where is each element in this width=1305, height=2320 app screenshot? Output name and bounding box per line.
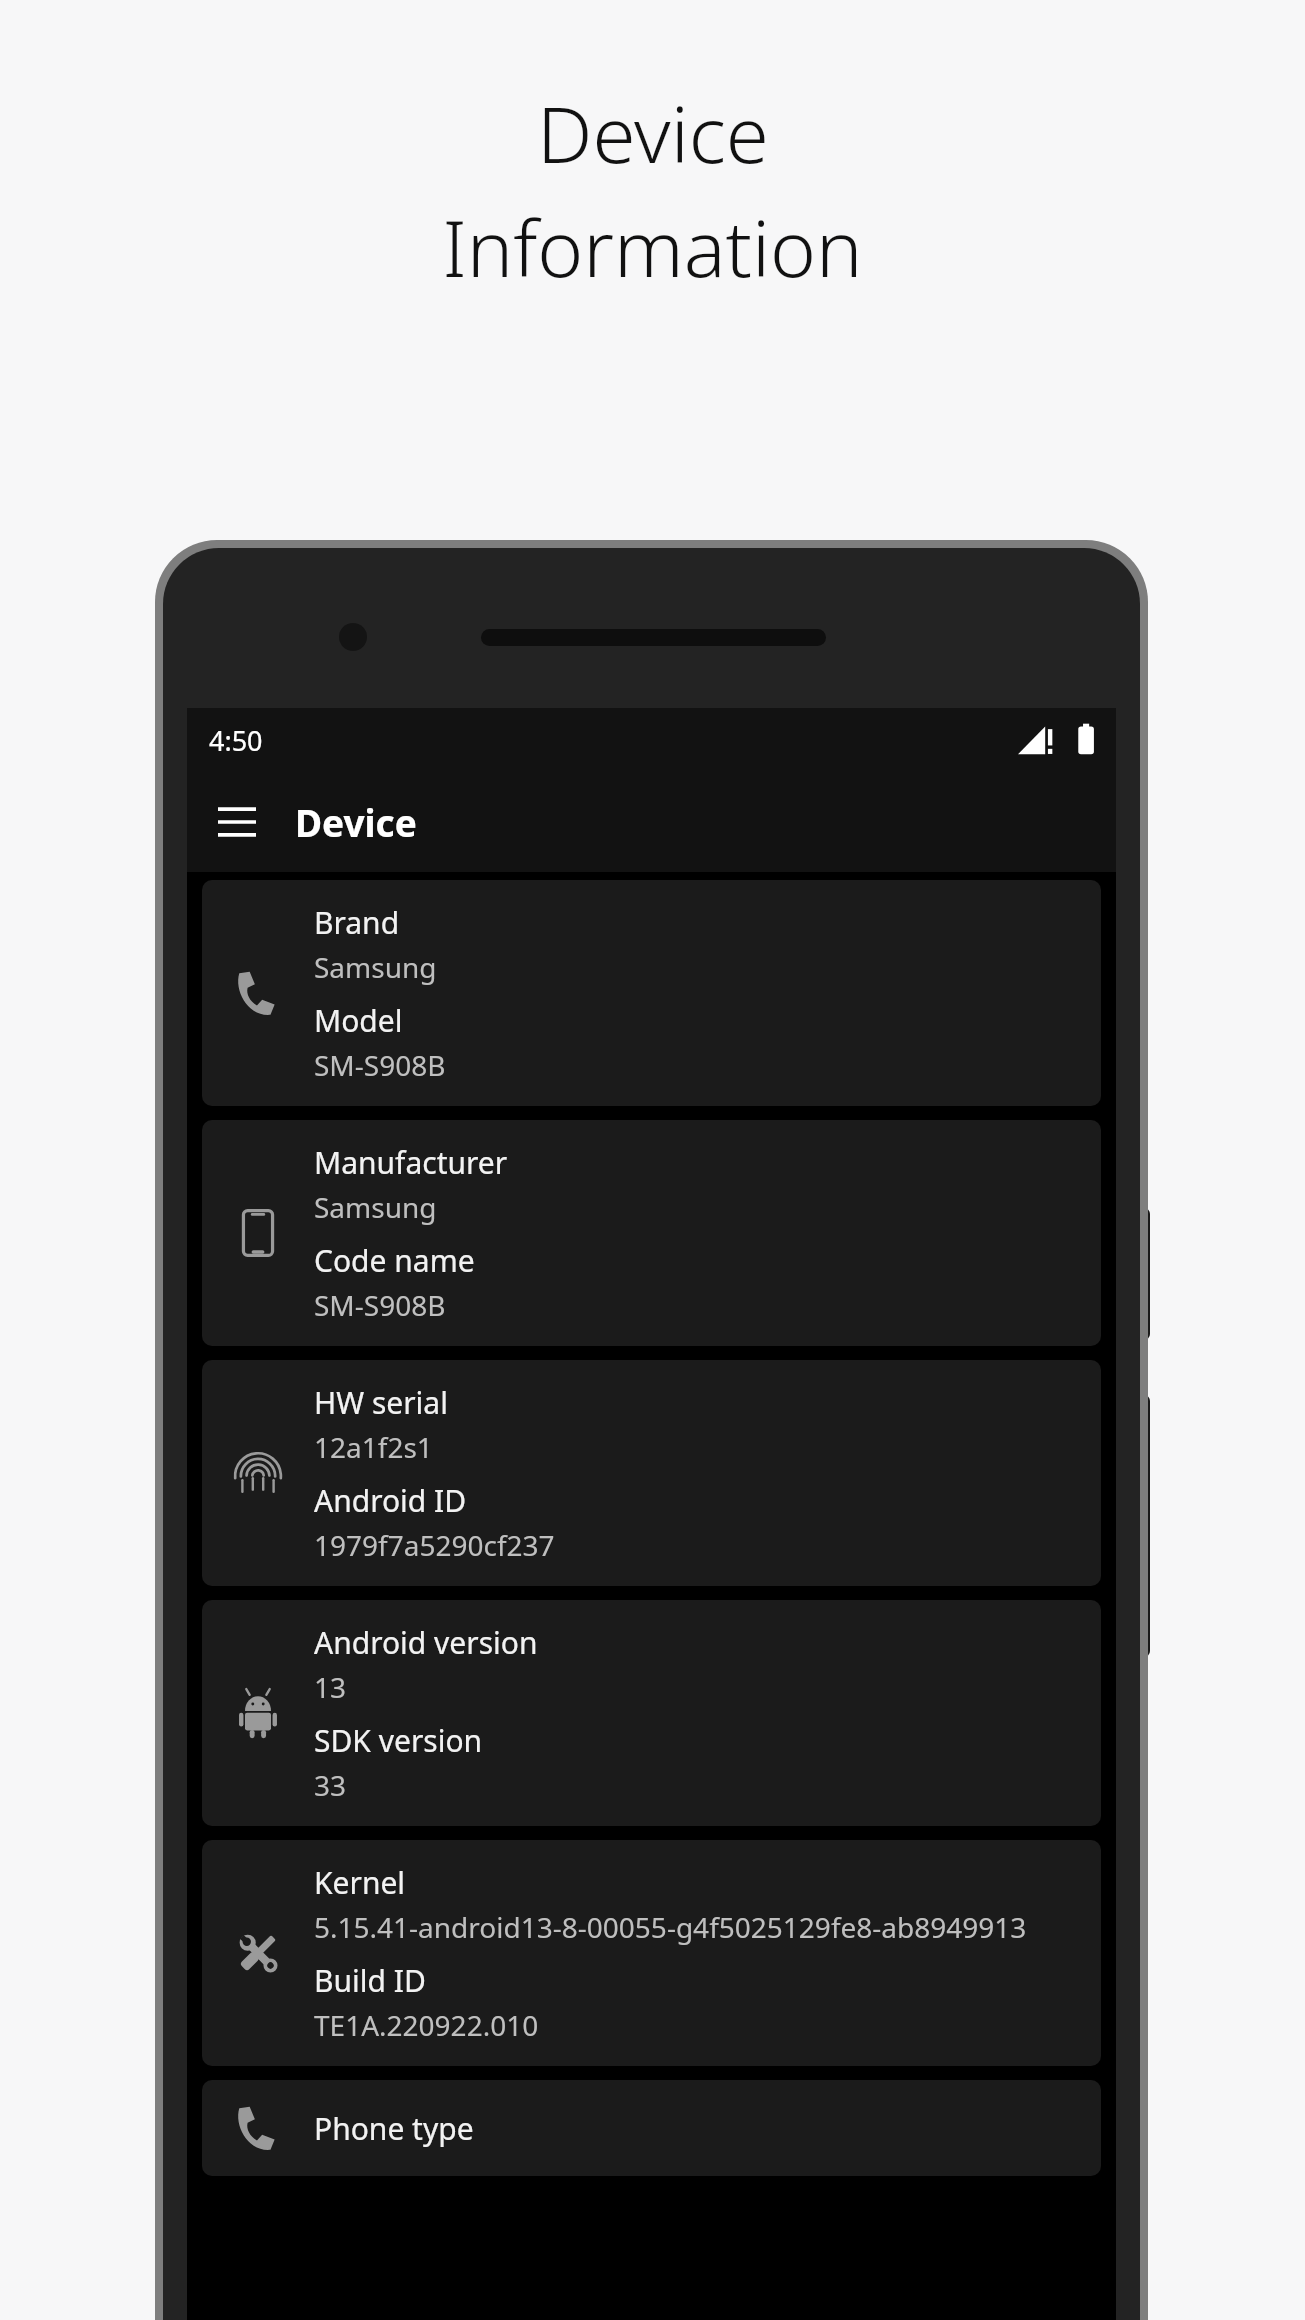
staticText: 1979f7a5290cf237 (314, 1526, 555, 1564)
staticText: TE1A.220922.010 (314, 2006, 539, 2044)
staticText: Code name (314, 1240, 475, 1281)
staticText: Manufacturer (314, 1142, 508, 1183)
button[interactable]: Open navigation menu (209, 794, 265, 850)
button[interactable]: Brand (202, 880, 1101, 1106)
staticText: Information (442, 194, 863, 300)
button[interactable]: Manufacturer (202, 1120, 1101, 1346)
staticText: 33 (314, 1766, 347, 1804)
staticText: 12a1f2s1 (314, 1428, 433, 1466)
button[interactable]: Kernel (202, 1840, 1101, 2066)
staticText: Device (537, 80, 769, 186)
staticText: SM-S908B (314, 1286, 446, 1324)
staticText: HW serial (314, 1382, 448, 1423)
staticText: Model (314, 1000, 403, 1041)
staticText: 4:50 (209, 722, 263, 759)
staticText: Brand (314, 902, 400, 943)
staticText: Phone type (314, 2108, 474, 2149)
staticText: Samsung (314, 948, 437, 986)
button[interactable]: HW serial (202, 1360, 1101, 1586)
staticText: Android version (314, 1622, 538, 1663)
staticText: Device (295, 797, 417, 847)
button[interactable]: Android version (202, 1600, 1101, 1826)
staticText: 5.15.41-android13-8-00055-g4f5025129fe8-… (314, 1908, 1027, 1946)
staticText: Kernel (314, 1862, 406, 1903)
button[interactable]: Phone type (202, 2080, 1101, 2176)
staticText: Build ID (314, 1960, 426, 2001)
staticText: Android ID (314, 1480, 467, 1521)
staticText: SDK version (314, 1720, 483, 1761)
staticText: Samsung (314, 1188, 437, 1226)
staticText: SM-S908B (314, 1046, 446, 1084)
staticText: 13 (314, 1668, 347, 1706)
